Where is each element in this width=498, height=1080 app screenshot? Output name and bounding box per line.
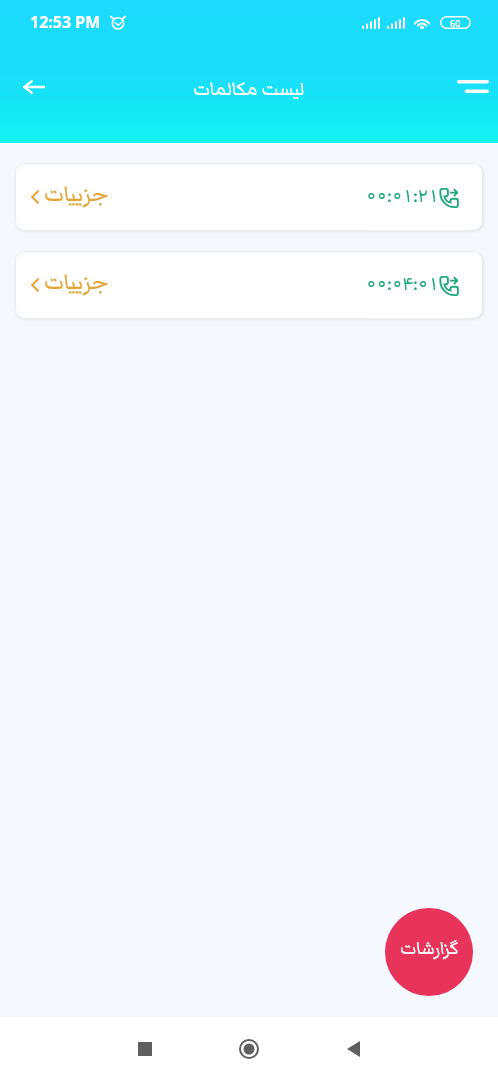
button[interactable]: Home [225,1025,273,1073]
staticText: 60 [450,17,461,29]
staticText: ۰۰:۰۴:۰۱ [366,270,439,299]
staticText: جزییات [44,266,109,300]
staticText: جزییات [44,178,109,212]
button[interactable]: Menu [451,64,495,108]
button[interactable]: Back [12,65,56,109]
button[interactable]: جزییات [15,163,483,231]
button[interactable]: Recent apps [121,1025,169,1073]
button[interactable]: Back [329,1025,377,1073]
button[interactable]: گزارشات [385,908,473,996]
button[interactable]: جزییات [15,251,483,319]
staticText: گزارشات [400,935,459,963]
staticText: لیست مکالمات [193,75,305,104]
staticText: 12:53 PM [30,11,101,33]
staticText: ۰۰:۰۱:۲۱ [366,182,439,211]
